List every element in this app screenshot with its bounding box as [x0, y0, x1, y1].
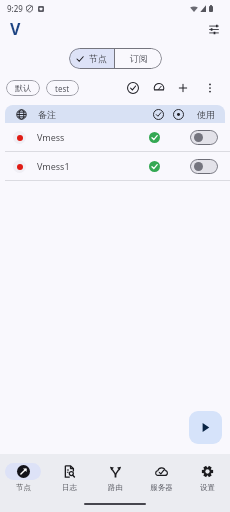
- button[interactable]: Add: [172, 80, 194, 96]
- staticText: V: [10, 18, 21, 40]
- staticText: 路由: [108, 483, 123, 492]
- staticText: 备注: [38, 109, 56, 120]
- button[interactable]: Toggle node: [190, 130, 218, 145]
- button[interactable]: 默认: [6, 80, 40, 96]
- staticText: 节点: [89, 53, 107, 64]
- staticText: 服务器: [150, 483, 173, 492]
- button[interactable]: 节点: [69, 48, 114, 69]
- button[interactable]: 订阅: [115, 48, 162, 69]
- staticText: Vmess: [37, 131, 65, 143]
- button[interactable]: 设置: [184, 457, 230, 498]
- button[interactable]: 服务器: [138, 457, 184, 498]
- button[interactable]: 备注: [5, 105, 225, 123]
- button[interactable]: More options: [199, 80, 221, 96]
- button[interactable]: Start: [189, 411, 222, 444]
- staticText: 默认: [15, 83, 31, 93]
- button[interactable]: Speed test: [148, 80, 170, 96]
- button[interactable]: Select all: [122, 80, 144, 96]
- button[interactable]: test: [46, 80, 79, 96]
- button[interactable]: Filter settings: [202, 17, 226, 41]
- button[interactable]: Vmess1: [0, 152, 230, 180]
- staticText: test: [55, 83, 70, 94]
- button[interactable]: 日志: [46, 457, 92, 498]
- staticText: Vmess1: [37, 160, 70, 172]
- staticText: 日志: [62, 483, 77, 492]
- staticText: 使用: [197, 109, 215, 120]
- button[interactable]: 节点: [0, 457, 46, 498]
- staticText: 订阅: [130, 53, 148, 64]
- staticText: 设置: [200, 483, 215, 492]
- staticText: 节点: [16, 483, 31, 492]
- button[interactable]: Toggle node: [190, 159, 218, 174]
- button[interactable]: 路由: [92, 457, 138, 498]
- button[interactable]: Vmess: [0, 123, 230, 151]
- staticText: 9:29: [7, 3, 23, 14]
